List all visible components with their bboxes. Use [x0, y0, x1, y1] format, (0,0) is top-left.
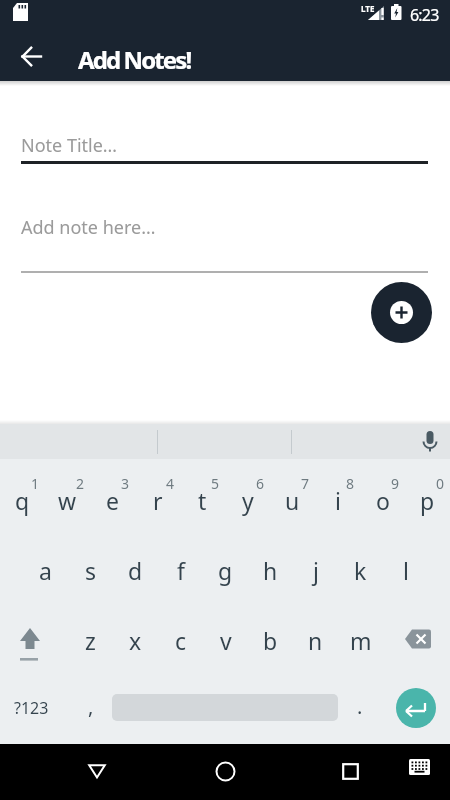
staticText: m [350, 625, 372, 656]
staticText: . [357, 693, 363, 720]
button[interactable]: h [248, 549, 293, 591]
button[interactable]: l [383, 549, 428, 591]
staticText: j [313, 555, 319, 586]
button[interactable] [201, 747, 249, 795]
button[interactable] [8, 623, 52, 667]
staticText: o [376, 485, 390, 516]
staticText: i [335, 485, 341, 516]
staticText: 4 [166, 474, 175, 492]
button[interactable] [326, 747, 374, 795]
staticText: 0 [436, 474, 445, 492]
button[interactable]: u [270, 479, 315, 521]
button[interactable]: a [22, 549, 68, 591]
staticText: d [128, 555, 143, 586]
staticText: q [15, 485, 30, 516]
button[interactable]: r [135, 479, 180, 521]
button[interactable] [396, 688, 436, 728]
staticText: , [88, 693, 94, 720]
staticText: 2 [76, 474, 85, 492]
button[interactable]: g [203, 549, 248, 591]
staticText: Add note here… [21, 215, 156, 240]
button[interactable]: d [113, 549, 158, 591]
staticText: y [242, 485, 254, 516]
button[interactable]: f [158, 549, 203, 591]
button[interactable]: e [90, 479, 135, 521]
button[interactable] [0, 81, 450, 421]
staticText: l [403, 555, 409, 586]
staticText: c [175, 625, 187, 656]
staticText: 5 [211, 474, 220, 492]
button[interactable]: o [360, 479, 405, 521]
staticText: x [129, 625, 142, 656]
button[interactable]: p [405, 479, 450, 521]
staticText: z [85, 625, 96, 656]
button[interactable] [73, 747, 121, 795]
staticText: 6 [256, 474, 265, 492]
button[interactable]: ?123 [8, 694, 54, 722]
button[interactable]: w [45, 479, 90, 521]
staticText: g [218, 555, 233, 586]
button[interactable]: , [76, 694, 106, 722]
button[interactable]: q [0, 479, 45, 521]
staticText: ?123 [14, 697, 49, 719]
staticText: w [58, 485, 77, 516]
button[interactable] [8, 33, 54, 79]
staticText: p [420, 485, 435, 516]
staticText: k [354, 555, 367, 586]
staticText: h [263, 555, 278, 586]
button[interactable] [396, 617, 440, 661]
staticText: a [39, 555, 52, 586]
button[interactable]: y [225, 479, 270, 521]
staticText: 6:23 [410, 4, 439, 26]
staticText: f [177, 555, 185, 586]
staticText: Add Notes! [78, 43, 191, 76]
button[interactable] [399, 747, 439, 787]
button[interactable]: z [67, 619, 113, 661]
staticText: v [220, 625, 232, 656]
button[interactable]: c [158, 619, 203, 661]
staticText: Note Title… [21, 133, 118, 158]
staticText: 9 [391, 474, 400, 492]
staticText: r [153, 485, 163, 516]
button[interactable]: k [338, 549, 383, 591]
button[interactable]: s [68, 549, 113, 591]
button[interactable]: m [338, 619, 383, 661]
staticText: u [285, 485, 300, 516]
button[interactable] [371, 282, 432, 343]
button[interactable]: v [203, 619, 248, 661]
button[interactable]: j [293, 549, 338, 591]
staticText: b [263, 625, 278, 656]
staticText: s [85, 555, 97, 586]
staticText: 7 [301, 474, 310, 492]
staticText: e [106, 485, 119, 516]
button[interactable]: x [113, 619, 158, 661]
button[interactable]: b [248, 619, 293, 661]
button[interactable]: t [180, 479, 225, 521]
staticText: t [198, 485, 207, 516]
staticText: LTE [361, 3, 375, 14]
button[interactable]: . [345, 694, 375, 722]
button[interactable]: n [293, 619, 338, 661]
staticText: 1 [31, 474, 40, 492]
staticText: 3 [121, 474, 130, 492]
staticText: n [308, 625, 323, 656]
button[interactable]: i [315, 479, 360, 521]
button[interactable] [414, 426, 446, 458]
staticText: 8 [346, 474, 355, 492]
